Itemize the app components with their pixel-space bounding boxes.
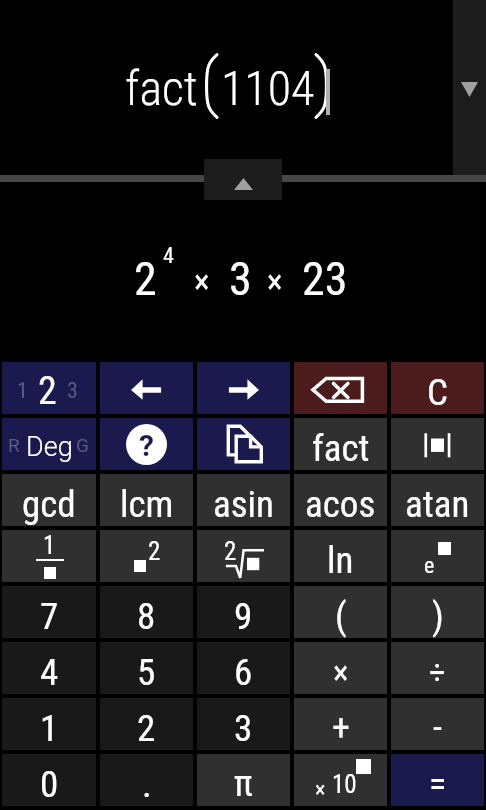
staticText: 2 (224, 537, 237, 566)
staticText: 10 (332, 770, 357, 799)
staticText: asin (213, 483, 275, 526)
staticText: 2 (137, 707, 156, 750)
button[interactable]: ln (294, 530, 387, 582)
button[interactable]: atan (391, 474, 484, 526)
staticText: G (76, 434, 89, 456)
button[interactable]: C (391, 362, 484, 414)
staticText: 1104 (221, 60, 315, 116)
staticText: ln (327, 539, 354, 582)
button[interactable]: 4 (2, 642, 96, 694)
staticText: 9 (234, 595, 253, 638)
staticText: Deg (26, 431, 73, 463)
button[interactable]: + (294, 698, 387, 750)
staticText: × (267, 262, 283, 301)
staticText: R (8, 434, 20, 456)
button[interactable]: π (197, 754, 290, 806)
button[interactable]: lcm (100, 474, 193, 526)
button[interactable]: ( (294, 586, 387, 638)
staticText: atan (405, 483, 470, 526)
button[interactable]: Absolute value (391, 418, 484, 470)
button[interactable]: asin (197, 474, 290, 526)
staticText: 3 (67, 378, 78, 404)
button[interactable]: Help (100, 418, 193, 470)
button[interactable]: Number base (2, 362, 96, 414)
staticText: 1 (40, 707, 59, 750)
staticText: 4 (163, 243, 174, 269)
staticText: × (333, 653, 349, 692)
staticText: ) (432, 595, 444, 638)
staticText: 23 (302, 252, 348, 306)
staticText: 7 (40, 595, 59, 638)
staticText: 1 (17, 378, 28, 404)
staticText: 2 (38, 369, 57, 414)
staticText: 3 (229, 252, 252, 306)
staticText: . (142, 763, 152, 806)
button[interactable]: acos (294, 474, 387, 526)
staticText: gcd (22, 483, 76, 526)
staticText: 8 (137, 595, 156, 638)
staticText: ? (139, 428, 154, 463)
button[interactable]: fact (294, 418, 387, 470)
staticText: C (427, 371, 448, 414)
button[interactable]: Move cursor left (100, 362, 193, 414)
staticText: 3 (234, 707, 253, 750)
button[interactable]: 5 (100, 642, 193, 694)
staticText: + (332, 707, 350, 749)
button[interactable]: 3 (197, 698, 290, 750)
button[interactable]: 8 (100, 586, 193, 638)
button[interactable]: Scroll down (453, 0, 486, 176)
button[interactable]: 6 (197, 642, 290, 694)
staticText: 5 (137, 651, 156, 694)
staticText: 1 (43, 531, 56, 560)
button[interactable]: Square root (197, 530, 290, 582)
staticText: acos (305, 483, 376, 526)
button[interactable]: Angle unit (2, 418, 96, 470)
staticText: 4 (40, 651, 59, 694)
staticText: ( (335, 595, 347, 638)
button[interactable]: Square (100, 530, 193, 582)
button[interactable]: . (100, 754, 193, 806)
button[interactable]: Expand calculation history (204, 159, 282, 200)
button[interactable]: ÷ (391, 642, 484, 694)
staticText: fact (312, 427, 370, 470)
button[interactable]: 0 (2, 754, 96, 806)
staticText: 2 (148, 537, 161, 566)
button[interactable]: e to the power of (391, 530, 484, 582)
button[interactable]: ) (391, 586, 484, 638)
staticText: 0 (40, 763, 59, 806)
button[interactable]: Move cursor right (197, 362, 290, 414)
button[interactable]: 9 (197, 586, 290, 638)
staticText: - (433, 707, 442, 749)
button[interactable]: × (294, 642, 387, 694)
staticText: ÷ (429, 653, 446, 692)
button[interactable]: 2 (100, 698, 193, 750)
button[interactable]: gcd (2, 474, 96, 526)
staticText: π (234, 763, 253, 805)
staticText: 2 (134, 252, 157, 306)
staticText: × (315, 777, 326, 803)
staticText: lcm (120, 483, 174, 526)
button[interactable]: Reciprocal (2, 530, 96, 582)
button[interactable]: 7 (2, 586, 96, 638)
staticText: fact (125, 60, 198, 116)
button[interactable]: = (391, 754, 484, 806)
button[interactable]: Times ten to the power of (294, 754, 387, 806)
button[interactable]: Backspace (294, 362, 387, 414)
staticText: e (424, 553, 435, 579)
staticText: = (429, 763, 447, 805)
staticText: 6 (234, 651, 253, 694)
button[interactable]: 1 (2, 698, 96, 750)
staticText: × (194, 262, 210, 301)
button[interactable]: - (391, 698, 484, 750)
button[interactable]: Copy (197, 418, 290, 470)
